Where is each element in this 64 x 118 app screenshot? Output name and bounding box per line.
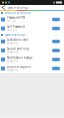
staticText: Account & Security: [5, 11, 30, 15]
button[interactable]: Back: [0, 5, 8, 10]
staticText: Sound and ring: [7, 47, 29, 50]
button[interactable]: Lock screen and: [0, 37, 64, 46]
button[interactable]: Self Password: [0, 24, 64, 33]
staticText: Lock screen and: [7, 38, 28, 41]
button[interactable]: Notification badge: [0, 55, 64, 64]
staticText: Enabled: [7, 41, 18, 45]
staticText: System Settings: [5, 33, 25, 37]
staticText: Self Password: [7, 25, 25, 28]
staticText: Set up: [7, 19, 16, 23]
button[interactable]: Sound and ring: [0, 46, 64, 55]
staticText: Enabled: [7, 68, 18, 72]
staticText: Password/PIN: [7, 16, 25, 19]
button[interactable]: Business Support: [0, 64, 64, 73]
staticText: Business Support: [7, 65, 31, 68]
staticText: Enabled: [7, 59, 18, 63]
staticText: System Settings: [8, 6, 28, 9]
staticText: Notification badge: [7, 56, 33, 59]
staticText: Not set: [7, 28, 17, 32]
staticText: Enabled: [7, 50, 18, 54]
button[interactable]: Password/PIN: [0, 15, 64, 24]
